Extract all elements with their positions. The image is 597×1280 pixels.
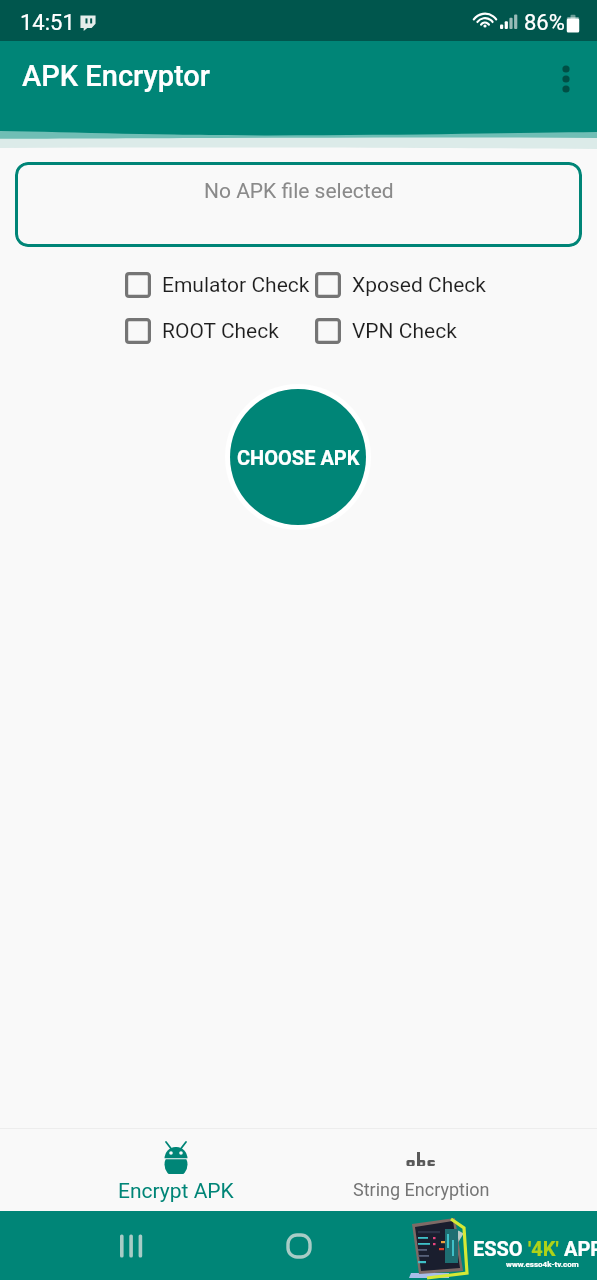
button[interactable]: No APK file selected — [15, 162, 582, 247]
button[interactable]: Home — [275, 1222, 323, 1270]
button[interactable]: VPN Check — [315, 318, 457, 344]
staticText: ESSO — [473, 1237, 528, 1260]
staticText: VPN Check — [352, 319, 457, 344]
button[interactable]: Encrypt APK — [96, 1129, 256, 1204]
staticText: Emulator Check — [162, 273, 310, 298]
button[interactable]: ROOT Check — [125, 318, 279, 344]
button[interactable]: CHOOSE APK — [230, 389, 366, 525]
staticText: 14:51 — [20, 10, 75, 36]
staticText: String Encryption — [353, 1179, 490, 1200]
staticText: ROOT Check — [162, 319, 279, 344]
staticText: 86% — [524, 10, 565, 36]
staticText: No APK file selected — [204, 179, 394, 204]
staticText: Encrypt APK — [118, 1179, 234, 1204]
button[interactable]: Back — [434, 1222, 482, 1270]
staticText: APK Encryptor — [22, 59, 210, 93]
button[interactable]: More options — [542, 55, 590, 103]
button[interactable]: Xposed Check — [315, 272, 486, 298]
button[interactable]: Emulator Check — [125, 272, 310, 298]
staticText: APPS — [559, 1237, 597, 1260]
staticText: www.esso4k-tv.com — [506, 1260, 579, 1269]
staticText: Xposed Check — [352, 273, 486, 298]
staticText: '4K' — [528, 1237, 559, 1260]
button[interactable]: String Encryption — [331, 1129, 511, 1200]
button[interactable]: Recent apps — [107, 1222, 155, 1270]
staticText: CHOOSE APK — [237, 446, 360, 469]
